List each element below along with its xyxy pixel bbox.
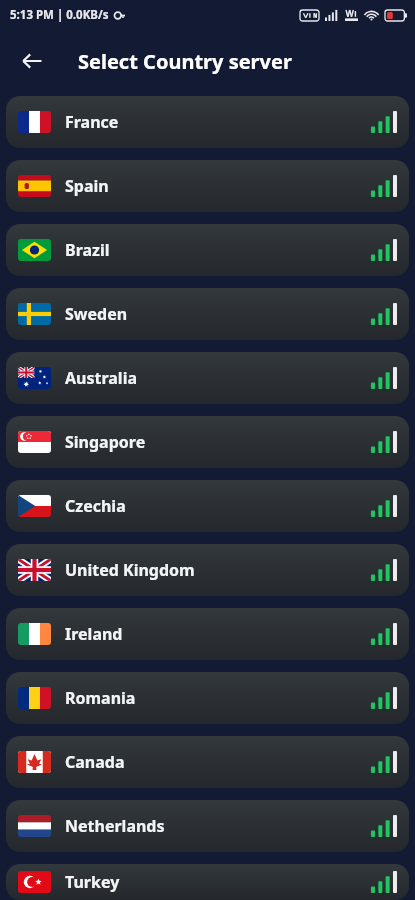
staticText: Brazil [65,239,110,261]
staticText: Turkey [65,871,120,893]
button[interactable]: United Kingdom [6,544,409,596]
staticText: Netherlands [65,815,165,837]
staticText: Australia [65,367,138,389]
button[interactable]: Back [12,41,52,81]
button[interactable]: Australia [6,352,409,404]
staticText: Canada [65,751,125,773]
button[interactable]: Singapore [6,416,409,468]
staticText: Spain [65,175,109,197]
button[interactable]: Netherlands [6,800,409,852]
staticText: France [65,111,119,133]
staticText: Select Country server [78,48,292,75]
staticText: 5:13 PM | 0.0KB/s [10,7,109,23]
staticText: Singapore [65,431,146,453]
staticText: United Kingdom [65,559,195,581]
button[interactable]: Romania [6,672,409,724]
staticText: Sweden [65,303,128,325]
staticText: Romania [65,687,136,709]
button[interactable]: Turkey [6,864,409,900]
button[interactable]: Sweden [6,288,409,340]
button[interactable]: France [6,96,409,148]
button[interactable]: Czechia [6,480,409,532]
button[interactable]: Spain [6,160,409,212]
staticText: Czechia [65,495,126,517]
button[interactable]: Ireland [6,608,409,660]
button[interactable]: Canada [6,736,409,788]
button[interactable]: Brazil [6,224,409,276]
staticText: Ireland [65,623,123,645]
